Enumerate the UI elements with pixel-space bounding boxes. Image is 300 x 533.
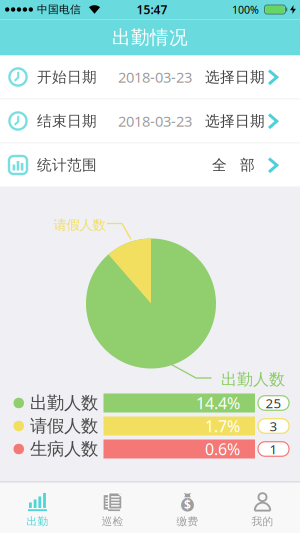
staticText: 出勤情况: [112, 26, 188, 49]
button[interactable]: 结束日期: [0, 99, 300, 142]
staticText: 请假人数: [53, 217, 105, 233]
button[interactable]: $: [150, 481, 225, 533]
staticText: 14.4%: [196, 392, 240, 414]
staticText: 2018-03-23: [118, 67, 192, 87]
staticText: 0.6%: [205, 438, 240, 460]
staticText: 请假人数: [30, 415, 98, 437]
staticText: 100%: [232, 2, 259, 17]
staticText: 缴费: [176, 515, 198, 528]
staticText: $: [184, 497, 191, 512]
staticText: 开始日期: [37, 68, 97, 86]
staticText: 出勤人数: [221, 369, 285, 389]
button[interactable]: 开始日期: [0, 55, 300, 98]
staticText: 2018-03-23: [118, 111, 192, 131]
button[interactable]: 出勤: [0, 481, 75, 533]
button[interactable]: 我的: [225, 481, 300, 533]
staticText: 1.7%: [205, 415, 240, 437]
staticText: 生病人数: [30, 438, 98, 460]
staticText: 15:47: [136, 1, 167, 17]
staticText: 1: [269, 440, 277, 458]
staticText: 全: [212, 156, 227, 174]
staticText: 统计范围: [37, 156, 97, 174]
staticText: 选择日期: [205, 68, 265, 86]
staticText: 选择日期: [205, 112, 265, 130]
staticText: 我的: [251, 515, 273, 528]
staticText: 出勤: [26, 515, 48, 528]
staticText: 25: [265, 394, 281, 412]
staticText: 中国电信: [37, 3, 81, 16]
staticText: 出勤人数: [30, 392, 98, 414]
staticText: 3: [269, 417, 277, 435]
button[interactable]: 统计范围: [0, 143, 300, 186]
staticText: 结束日期: [37, 112, 97, 130]
staticText: 巡检: [101, 515, 123, 528]
button[interactable]: 巡检: [75, 481, 150, 533]
staticText: 部: [240, 156, 255, 174]
